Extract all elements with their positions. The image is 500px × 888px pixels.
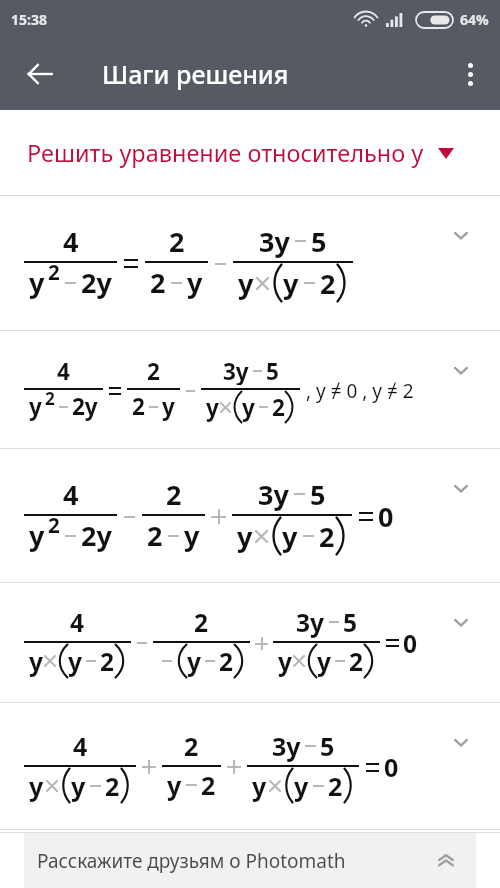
staticText: y — [162, 391, 175, 422]
staticText: y — [252, 769, 267, 803]
button[interactable]: 4 — [0, 583, 500, 703]
button[interactable]: More options — [446, 50, 494, 98]
other: Expand step — [448, 222, 474, 248]
staticText: 3y — [296, 606, 325, 638]
staticText: y — [283, 265, 299, 302]
other: Expand step — [448, 609, 474, 635]
button[interactable]: Решить уравнение относительно y — [0, 110, 500, 196]
staticText: y — [29, 645, 43, 678]
staticText: 5 — [311, 223, 327, 258]
staticText: 15:38 — [11, 10, 47, 29]
staticText: 2y — [72, 391, 98, 422]
staticText: y — [242, 392, 255, 423]
staticText: 2 — [169, 223, 185, 258]
staticText: 2 — [194, 606, 209, 638]
staticText: y — [71, 769, 86, 803]
staticText: 2 — [132, 391, 145, 422]
staticText: 2 — [201, 768, 216, 802]
staticText: 4 — [57, 356, 70, 385]
staticText: y — [29, 391, 42, 422]
staticText: y — [68, 645, 82, 678]
staticText: y — [282, 518, 298, 555]
staticText: y — [187, 264, 203, 301]
button[interactable]: 4 — [0, 331, 500, 449]
staticText: 2 — [166, 476, 182, 511]
staticText: 5 — [343, 606, 358, 638]
staticText: , y ≠ 0 , y ≠ 2 — [306, 378, 414, 404]
staticText: 3y — [272, 729, 301, 762]
staticText: 64% — [460, 10, 489, 29]
staticText: 2 — [48, 511, 60, 539]
button[interactable]: Back — [14, 48, 66, 100]
staticText: Решить уравнение относительно y — [27, 137, 424, 169]
staticText: y — [167, 768, 182, 802]
staticText: 2 — [45, 387, 55, 410]
button[interactable]: 4 — [0, 703, 500, 830]
staticText: 3y — [223, 356, 249, 385]
other: Expand step — [448, 729, 474, 755]
staticText: y — [187, 645, 201, 678]
staticText: Расскажите друзьям о Photomath — [37, 848, 346, 874]
staticText: 4 — [63, 476, 79, 511]
staticText: 3y — [259, 223, 290, 258]
staticText: 2 — [219, 645, 234, 678]
staticText: 5 — [310, 476, 326, 511]
staticText: Шаги решения — [102, 57, 289, 91]
other: Expand step — [448, 475, 474, 501]
staticText: 0 — [378, 498, 394, 535]
staticText: 2 — [349, 645, 364, 678]
staticText: 3y — [258, 476, 289, 511]
other: Expand step — [448, 357, 474, 383]
staticText: 4 — [73, 729, 88, 762]
staticText: y — [317, 645, 331, 678]
staticText: 2 — [147, 517, 163, 554]
staticText: 5 — [266, 356, 279, 385]
staticText: 2y — [81, 517, 112, 554]
staticText: 2 — [48, 258, 60, 286]
staticText: 2 — [320, 265, 336, 302]
staticText: 5 — [320, 729, 335, 762]
staticText: y — [237, 518, 253, 555]
staticText: y — [29, 517, 45, 554]
staticText: 2 — [328, 769, 343, 803]
staticText: 2 — [147, 356, 160, 385]
staticText: 0 — [403, 627, 418, 660]
staticText: y — [294, 769, 309, 803]
staticText: 4 — [70, 606, 85, 638]
staticText: 2 — [319, 518, 335, 555]
staticText: 2 — [105, 769, 120, 803]
staticText: 4 — [63, 223, 79, 258]
staticText: 2 — [184, 729, 199, 762]
button[interactable]: 4 — [0, 449, 500, 583]
staticText: y — [29, 264, 45, 301]
staticText: y — [184, 517, 200, 554]
staticText: 2 — [100, 645, 115, 678]
button[interactable]: Расскажите друзьям о Photomath — [24, 833, 476, 888]
staticText: y — [278, 645, 292, 678]
staticText: 0 — [384, 750, 399, 784]
staticText: y — [29, 769, 44, 803]
staticText: y — [206, 392, 219, 423]
staticText: 2 — [150, 264, 166, 301]
staticText: 2 — [272, 392, 285, 423]
staticText: 2y — [81, 264, 112, 301]
staticText: y — [238, 265, 254, 302]
button[interactable]: 4 — [0, 196, 500, 331]
